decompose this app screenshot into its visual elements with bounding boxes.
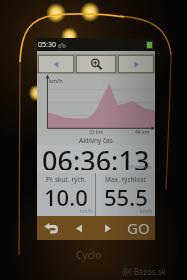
staticText: km/h: [49, 77, 63, 84]
staticText: km/h: [140, 208, 153, 215]
button[interactable]: Back: [37, 216, 65, 240]
staticText: 06:36:13: [42, 142, 150, 170]
button[interactable]: GO: [121, 216, 155, 240]
button[interactable]: Next: [119, 56, 153, 72]
staticText: 55.5: [104, 182, 148, 212]
staticText: Aktívny čas: [79, 136, 113, 145]
staticText: 33 km: [89, 129, 104, 136]
staticText: GO: [127, 218, 150, 238]
staticText: km/h: [80, 208, 93, 215]
button[interactable]: 06:36:13: [37, 145, 155, 173]
staticText: 44 km: [135, 129, 150, 136]
staticText: hh:mm:ss: [129, 164, 153, 171]
button[interactable]: Next: [93, 216, 121, 240]
staticText: Max. rýchlosť: [105, 175, 146, 184]
button[interactable]: Previous: [65, 216, 93, 240]
staticText: 10.0: [44, 182, 88, 212]
staticText: Pr. skut. rých.: [46, 175, 87, 184]
button[interactable]: Max. rýchlosť: [96, 173, 155, 216]
staticText: @( Bazos.sk: [122, 266, 167, 277]
button[interactable]: Previous: [39, 56, 73, 72]
staticText: 05:30: [38, 40, 56, 50]
staticText: Cyclo: [76, 248, 102, 262]
button[interactable]: Zoom in: [77, 56, 115, 72]
button[interactable]: Pr. skut. rých.: [37, 173, 95, 216]
